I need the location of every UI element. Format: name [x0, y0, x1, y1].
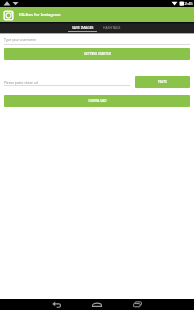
staticText: HASHTAGS: [103, 25, 121, 30]
staticText: GETTING STARTED: [84, 52, 111, 56]
button[interactable]: SAVE IMAGES: [68, 22, 97, 33]
button[interactable]: PASTE: [135, 76, 190, 88]
button[interactable]: GETTING STARTED: [4, 48, 190, 60]
button[interactable]: Home: [77, 299, 117, 310]
staticText: SAVE IMAGES: [72, 25, 94, 30]
staticText: Please paste share url: [4, 80, 38, 84]
button[interactable]: Recents: [117, 299, 157, 310]
button[interactable]: DOWNLOAD: [4, 95, 190, 107]
staticText: DOWNLOAD: [88, 99, 107, 103]
staticText: PASTE: [158, 80, 167, 84]
button[interactable]: HASHTAGS: [97, 22, 126, 33]
staticText: IGLikes for Instagram: [19, 12, 61, 17]
staticText: Type your username: [4, 37, 36, 41]
staticText: 12:45: [182, 1, 193, 7]
button[interactable]: Back: [37, 299, 77, 310]
